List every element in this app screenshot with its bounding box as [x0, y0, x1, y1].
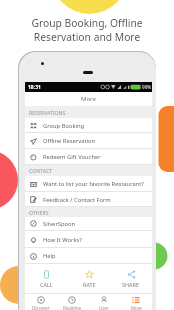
staticText: OTHERS [29, 209, 49, 216]
staticText: 18:31 [28, 84, 41, 91]
staticText: 96% [142, 84, 152, 90]
staticText: User [99, 305, 109, 310]
button[interactable]: SilverSpoon [25, 216, 152, 231]
staticText: Redeem Gift Voucher [43, 153, 101, 161]
button[interactable]: More [120, 294, 152, 310]
button[interactable]: CALL [25, 264, 68, 293]
staticText: More [81, 95, 96, 103]
button[interactable]: Redeem Gift Voucher [25, 149, 152, 165]
staticText: Realtime [63, 305, 82, 310]
button[interactable]: Discover [25, 294, 56, 310]
button[interactable]: SHARE [110, 264, 152, 293]
staticText: Group Booking, Offline Reservation and M… [0, 16, 174, 44]
staticText: Group Booking [43, 122, 85, 130]
button[interactable]: Offline Reservation [25, 133, 152, 149]
staticText: RESERVATIONS [29, 109, 66, 116]
staticText: Offline Reservation [43, 137, 96, 145]
staticText: Feedback / Contact Form [43, 196, 111, 204]
button[interactable]: Want to list your favorite Restaurant? [25, 176, 152, 192]
staticText: More [131, 305, 142, 310]
staticText: How It Works? [43, 236, 82, 244]
staticText: RATE [83, 281, 96, 288]
button[interactable]: Group Booking [25, 118, 152, 133]
staticText: SHARE [122, 281, 140, 288]
staticText: Want to list your favorite Restaurant? [43, 180, 144, 188]
button[interactable]: How It Works? [25, 232, 152, 248]
button[interactable]: Realtime [56, 294, 88, 310]
button[interactable]: RATE [68, 264, 110, 293]
button[interactable]: User [88, 294, 120, 310]
staticText: Help [43, 252, 56, 260]
staticText: CONTACT [29, 167, 53, 174]
staticText: CALL [40, 281, 53, 288]
staticText: SilverSpoon [43, 220, 76, 228]
button[interactable]: Feedback / Contact Form [25, 192, 152, 207]
button[interactable]: Help [25, 248, 152, 264]
staticText: Discover [32, 305, 50, 310]
